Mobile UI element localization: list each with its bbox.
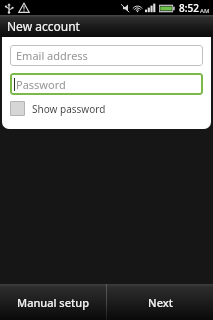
button[interactable]: Manual setup — [0, 284, 106, 320]
button[interactable]: Next — [107, 284, 213, 320]
button[interactable]: Password — [10, 73, 203, 95]
staticText: Password — [16, 77, 66, 92]
staticText: New account — [7, 18, 80, 34]
staticText: AM — [200, 7, 210, 15]
button[interactable]: Email address — [10, 45, 203, 66]
staticText: Show password — [32, 102, 106, 116]
staticText: Manual setup — [17, 295, 89, 310]
staticText: Next — [148, 295, 173, 310]
staticText: Email address — [16, 48, 88, 63]
staticText: 8:52 — [179, 1, 199, 15]
button[interactable]: Show password — [10, 101, 203, 116]
